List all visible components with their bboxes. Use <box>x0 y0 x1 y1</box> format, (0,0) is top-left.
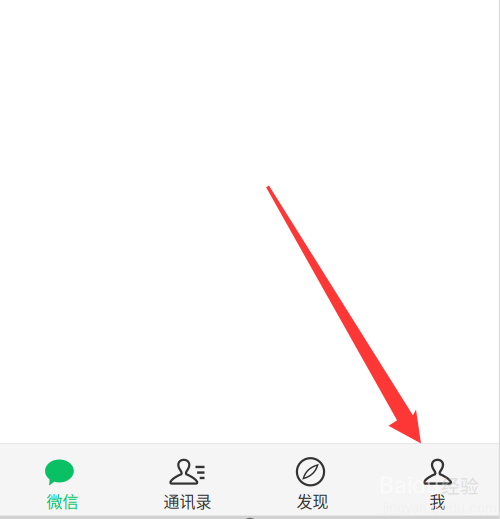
staticText: 经验 <box>441 472 479 499</box>
staticText: Baidu <box>379 471 439 499</box>
staticText: 我 <box>429 489 445 512</box>
button[interactable]: 发现 <box>250 439 375 519</box>
staticText: 发现 <box>296 489 328 512</box>
button[interactable]: 通讯录 <box>125 439 250 519</box>
staticText: 微信 <box>46 489 78 512</box>
staticText: jingyan.baidu.com <box>383 500 497 516</box>
staticText: 通讯录 <box>163 489 211 512</box>
button[interactable]: 我 <box>375 439 500 519</box>
button[interactable]: 微信 <box>0 439 125 519</box>
